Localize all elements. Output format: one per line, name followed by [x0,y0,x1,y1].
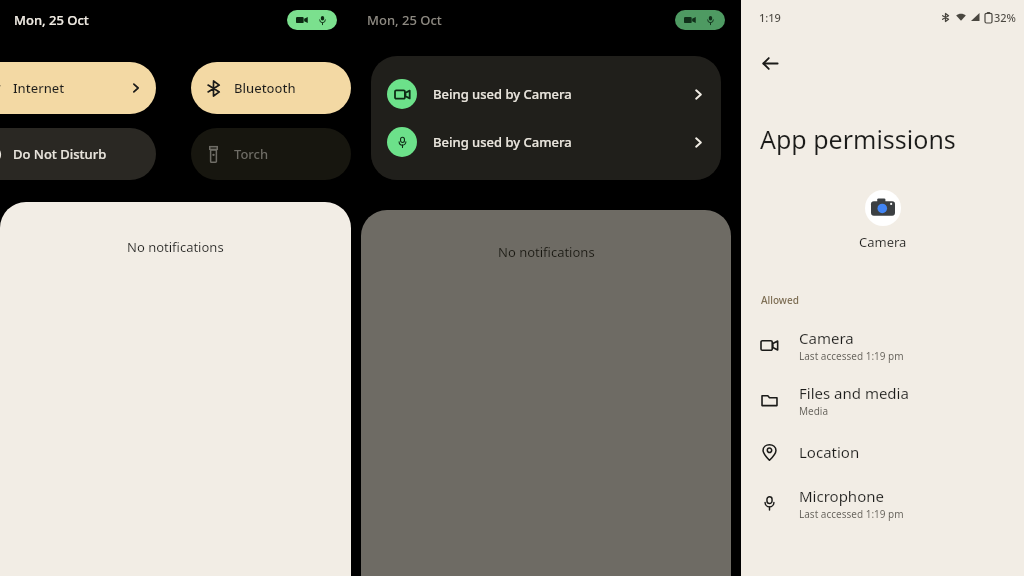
staticText: Being used by Camera [433,85,692,103]
staticText: No notifications [127,238,224,256]
button[interactable]: Being used by Camera [371,118,721,166]
staticText: 32% [994,10,1016,25]
staticText: 1:19 [759,10,781,25]
button[interactable]: Camera [741,321,1024,370]
staticText: Last accessed 1:19 pm [799,507,904,521]
staticText: Bluetooth [234,79,337,97]
button[interactable]: Files and media [741,376,1024,425]
staticText: Files and media [799,383,909,403]
button[interactable]: Do Not Disturb [0,128,156,180]
staticText: Media [799,404,829,418]
staticText: Torch [234,145,337,163]
button[interactable]: Being used by Camera [371,70,721,118]
staticText: No notifications [498,243,595,261]
staticText: Camera [859,233,907,251]
staticText: Last accessed 1:19 pm [799,349,904,363]
button[interactable]: Location [741,435,1024,469]
staticText: Internet [13,79,130,97]
button[interactable]: Internet [0,62,156,114]
button[interactable]: Camera and microphone in use [287,10,337,30]
staticText: Camera [799,328,854,348]
staticText: Mon, 25 Oct [14,11,89,29]
staticText: Being used by Camera [433,133,692,151]
button[interactable]: Camera and microphone in use [675,10,725,30]
staticText: Mon, 25 Oct [367,11,442,29]
staticText: Do Not Disturb [13,145,142,163]
button[interactable]: Bluetooth [191,62,351,114]
staticText: Allowed [761,293,799,307]
button[interactable]: Microphone [741,479,1024,528]
staticText: Microphone [799,486,884,506]
staticText: App permissions [760,122,956,156]
button[interactable]: Torch [191,128,351,180]
button[interactable]: Back [753,46,787,80]
staticText: Location [799,442,860,462]
